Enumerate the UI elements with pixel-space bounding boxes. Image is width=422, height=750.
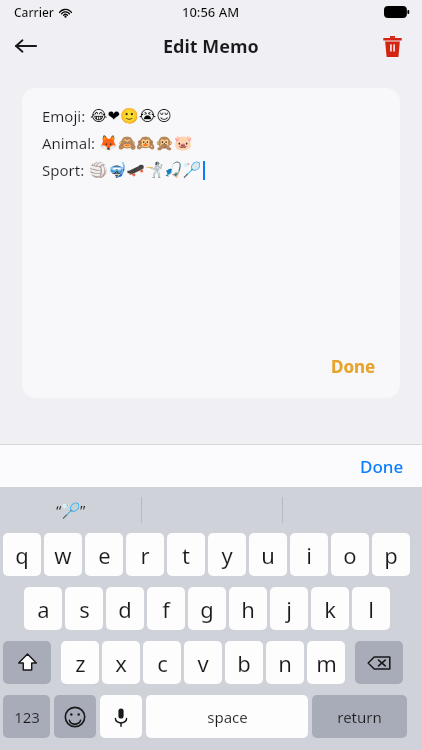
button[interactable]: Delete xyxy=(374,28,410,64)
button[interactable]: “🏸” xyxy=(0,487,141,533)
staticText: f xyxy=(162,594,170,624)
button[interactable]: Dictate xyxy=(100,695,142,738)
button[interactable]: e xyxy=(85,533,123,576)
staticText: Carrier xyxy=(14,4,54,20)
button[interactable]: Emoji xyxy=(54,695,96,738)
button[interactable]: t xyxy=(167,533,205,576)
staticText: x xyxy=(115,648,127,678)
staticText: 🏐🤿🛹🤺🎣🏸 xyxy=(89,161,202,179)
button[interactable]: a xyxy=(24,587,62,630)
button[interactable]: x xyxy=(102,641,140,684)
button[interactable]: Backspace xyxy=(355,641,403,684)
button[interactable]: c xyxy=(143,641,181,684)
button[interactable]: j xyxy=(270,587,308,630)
staticText: 😂❤️🙂😭😌 xyxy=(90,107,172,125)
staticText: 10:56 AM xyxy=(182,3,240,21)
staticText: p xyxy=(384,540,398,570)
staticText: k xyxy=(324,594,336,624)
button[interactable]: return xyxy=(312,695,407,738)
staticText: t xyxy=(182,540,190,570)
button[interactable]: m xyxy=(307,641,345,684)
button[interactable]: Done xyxy=(356,451,408,482)
staticText: y xyxy=(221,540,233,570)
button[interactable]: 123 xyxy=(3,695,50,738)
staticText: h xyxy=(241,594,255,624)
button[interactable]: space xyxy=(146,695,308,738)
staticText: z xyxy=(75,648,86,678)
button[interactable]: y xyxy=(208,533,246,576)
button[interactable]: Done xyxy=(327,351,380,382)
staticText: Sport: xyxy=(42,160,89,180)
button[interactable]: Back xyxy=(6,26,46,66)
button[interactable]: i xyxy=(290,533,328,576)
button[interactable]: d xyxy=(106,587,144,630)
staticText: e xyxy=(98,540,111,570)
button[interactable]: z xyxy=(61,641,99,684)
button[interactable]: k xyxy=(311,587,349,630)
staticText: u xyxy=(261,540,275,570)
button[interactable]: r xyxy=(126,533,164,576)
button[interactable]: n xyxy=(266,641,304,684)
button[interactable]: q xyxy=(3,533,41,576)
staticText: 🦊🙈🙉🙊🐷 xyxy=(99,134,193,152)
staticText: return xyxy=(337,707,382,727)
staticText: r xyxy=(140,540,150,570)
staticText: d xyxy=(118,594,132,624)
staticText: Done xyxy=(331,355,376,378)
button[interactable]: Shift xyxy=(3,641,51,684)
staticText: a xyxy=(37,594,50,624)
staticText: v xyxy=(197,648,209,678)
staticText: Animal: xyxy=(42,133,99,153)
button[interactable]: g xyxy=(188,587,226,630)
staticText: 123 xyxy=(14,707,40,727)
staticText: l xyxy=(368,594,374,624)
staticText: m xyxy=(316,648,337,678)
button[interactable]: b xyxy=(225,641,263,684)
button[interactable]: l xyxy=(352,587,390,630)
button[interactable]: v xyxy=(184,641,222,684)
staticText: j xyxy=(286,594,292,624)
button[interactable]: u xyxy=(249,533,287,576)
button[interactable]: o xyxy=(331,533,369,576)
staticText: g xyxy=(200,594,214,624)
staticText: i xyxy=(306,540,312,570)
staticText: s xyxy=(79,594,90,624)
staticText: o xyxy=(343,540,357,570)
staticText: Done xyxy=(360,455,404,478)
button[interactable]: f xyxy=(147,587,185,630)
staticText: b xyxy=(237,648,251,678)
staticText: Edit Memo xyxy=(163,34,259,59)
button[interactable]: p xyxy=(372,533,410,576)
button[interactable]: h xyxy=(229,587,267,630)
staticText: n xyxy=(278,648,292,678)
staticText: c xyxy=(157,648,168,678)
button[interactable]: s xyxy=(65,587,103,630)
staticText: Emoji: xyxy=(42,106,90,126)
button[interactable]: w xyxy=(44,533,82,576)
staticText: space xyxy=(207,707,248,727)
staticText: “🏸” xyxy=(56,500,86,520)
staticText: q xyxy=(15,540,29,570)
staticText: w xyxy=(54,540,72,570)
